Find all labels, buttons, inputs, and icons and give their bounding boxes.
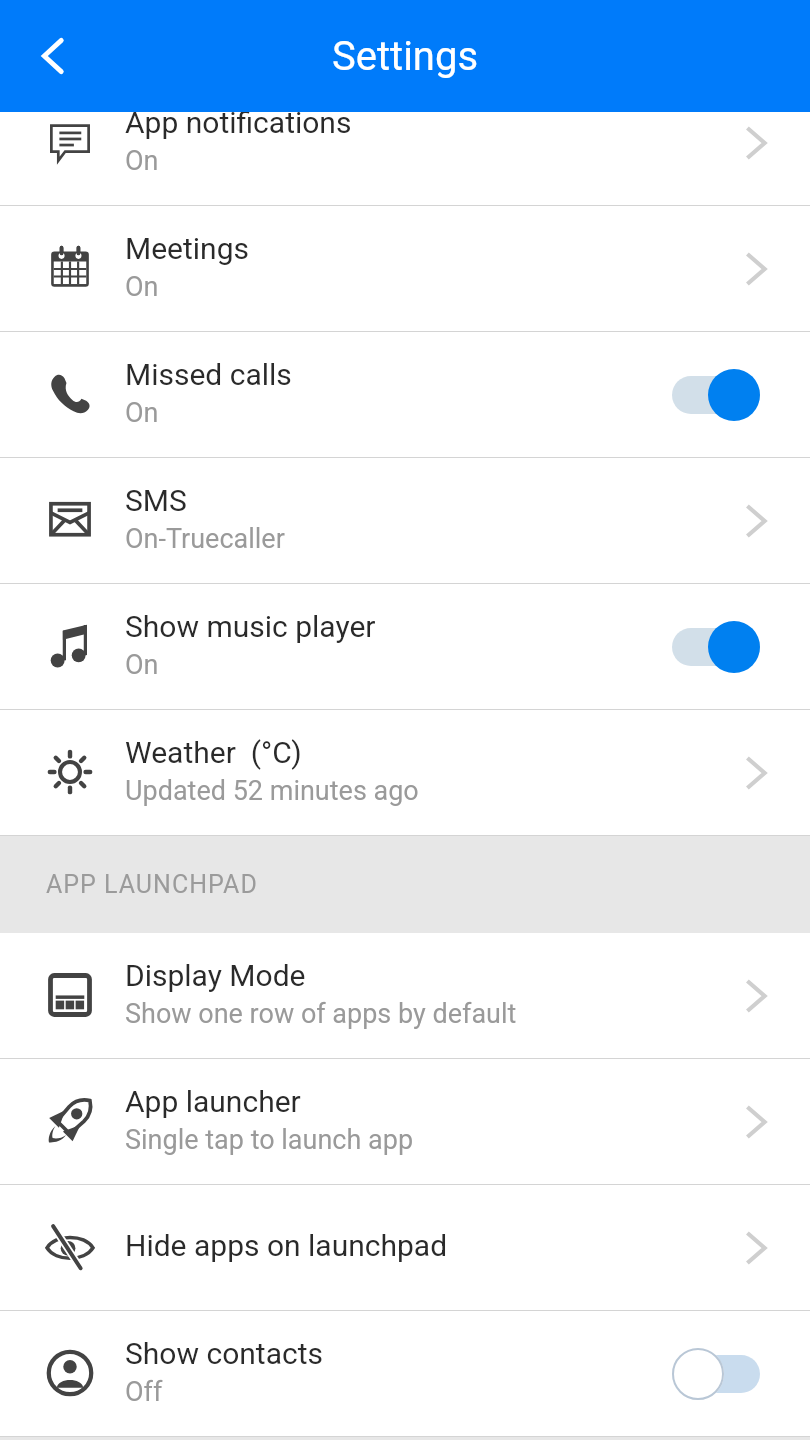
- staticText: Show contacts: [125, 1336, 323, 1371]
- staticText: Hide apps on launchpad: [125, 1228, 448, 1263]
- button[interactable]: App launcher: [0, 1059, 810, 1184]
- staticText: App launcher: [125, 1084, 301, 1119]
- button[interactable]: Hide apps on launchpad: [0, 1185, 810, 1310]
- staticText: On-Truecaller: [125, 523, 285, 555]
- staticText: Missed calls: [125, 357, 292, 392]
- staticText: On: [125, 649, 159, 681]
- staticText: Weather (°C): [125, 735, 302, 770]
- staticText: Display Mode: [125, 958, 306, 993]
- staticText: Meetings: [125, 231, 250, 266]
- button[interactable]: Missed calls: [0, 332, 810, 457]
- button[interactable]: App notifications: [0, 112, 810, 205]
- staticText: SMS: [125, 483, 187, 518]
- button[interactable]: Back: [5, 8, 101, 104]
- button[interactable]: Meetings: [0, 206, 810, 331]
- button[interactable]: Show music player: [0, 584, 810, 709]
- staticText: APP LAUNCHPAD: [46, 870, 258, 899]
- staticText: Updated 52 minutes ago: [125, 775, 419, 807]
- staticText: App notifications: [125, 112, 352, 140]
- staticText: Off: [125, 1376, 163, 1408]
- button[interactable]: Display Mode: [0, 933, 810, 1058]
- staticText: On: [125, 271, 159, 303]
- button[interactable]: Weather (°C): [0, 710, 810, 835]
- button[interactable]: SMS: [0, 458, 810, 583]
- staticText: Show one row of apps by default: [125, 998, 517, 1030]
- staticText: Settings: [332, 33, 479, 80]
- button[interactable]: Show contacts: [0, 1311, 810, 1436]
- staticText: Single tap to launch app: [125, 1124, 414, 1156]
- staticText: Show music player: [125, 609, 376, 644]
- staticText: On: [125, 397, 159, 429]
- staticText: On: [125, 145, 159, 177]
